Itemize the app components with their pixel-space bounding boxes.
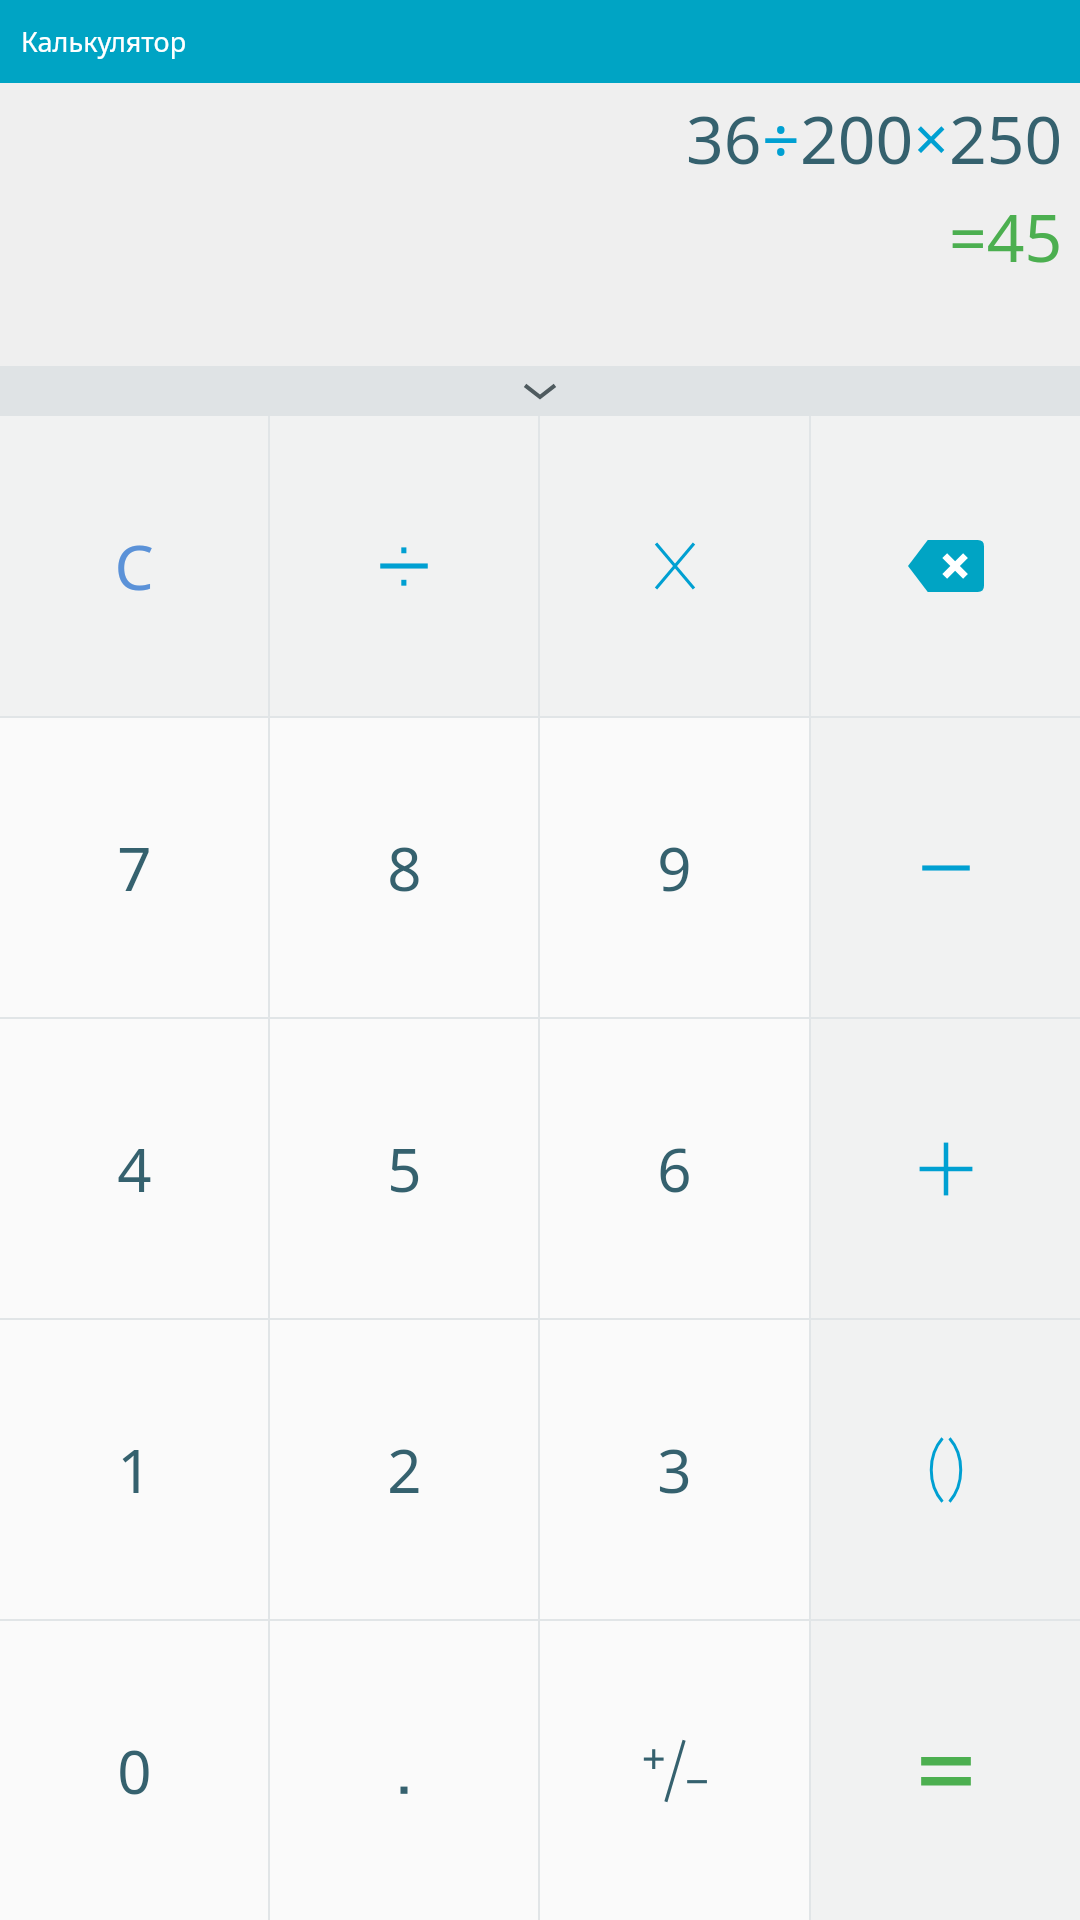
button[interactable]: 6 — [540, 1019, 809, 1318]
button[interactable]: Decimal point — [270, 1621, 538, 1920]
button[interactable]: 4 — [0, 1019, 268, 1318]
button[interactable]: Minus — [811, 718, 1080, 1017]
staticText: 8 — [387, 827, 422, 909]
button[interactable]: 2 — [270, 1320, 538, 1619]
button[interactable]: 3 — [540, 1320, 809, 1619]
staticText: × — [914, 97, 949, 179]
button[interactable]: 8 — [270, 718, 538, 1017]
button[interactable]: 9 — [540, 718, 809, 1017]
button[interactable]: Divide — [270, 416, 538, 716]
staticText: 2 — [387, 1429, 422, 1511]
staticText: 250 — [949, 93, 1063, 183]
button[interactable]: Equals — [811, 1621, 1080, 1920]
staticText: =45 — [949, 191, 1063, 281]
button[interactable]: Plus minus sign — [540, 1621, 809, 1920]
button[interactable]: Plus — [811, 1019, 1080, 1318]
staticText: 9 — [657, 827, 692, 909]
button[interactable]: 5 — [270, 1019, 538, 1318]
staticText: 3 — [657, 1429, 692, 1511]
button[interactable]: 1 — [0, 1320, 268, 1619]
staticText: 6 — [657, 1128, 692, 1210]
button[interactable]: Parentheses — [811, 1320, 1080, 1619]
button[interactable]: Collapse display — [0, 366, 1080, 416]
staticText: 0 — [117, 1730, 152, 1812]
staticText: Калькулятор — [21, 23, 187, 60]
button[interactable]: Backspace — [811, 416, 1080, 716]
staticText: 7 — [117, 827, 152, 909]
staticText: 1 — [117, 1429, 152, 1511]
staticText: C — [114, 524, 154, 608]
button[interactable]: Multiply — [540, 416, 809, 716]
staticText: 5 — [387, 1128, 422, 1210]
staticText: ÷ — [762, 93, 800, 183]
button[interactable]: 7 — [0, 718, 268, 1017]
staticText: 200 — [800, 93, 914, 183]
button[interactable]: Clear — [0, 416, 268, 716]
staticText: 4 — [117, 1128, 152, 1210]
staticText: 36 — [686, 93, 762, 183]
button[interactable]: 0 — [0, 1621, 268, 1920]
